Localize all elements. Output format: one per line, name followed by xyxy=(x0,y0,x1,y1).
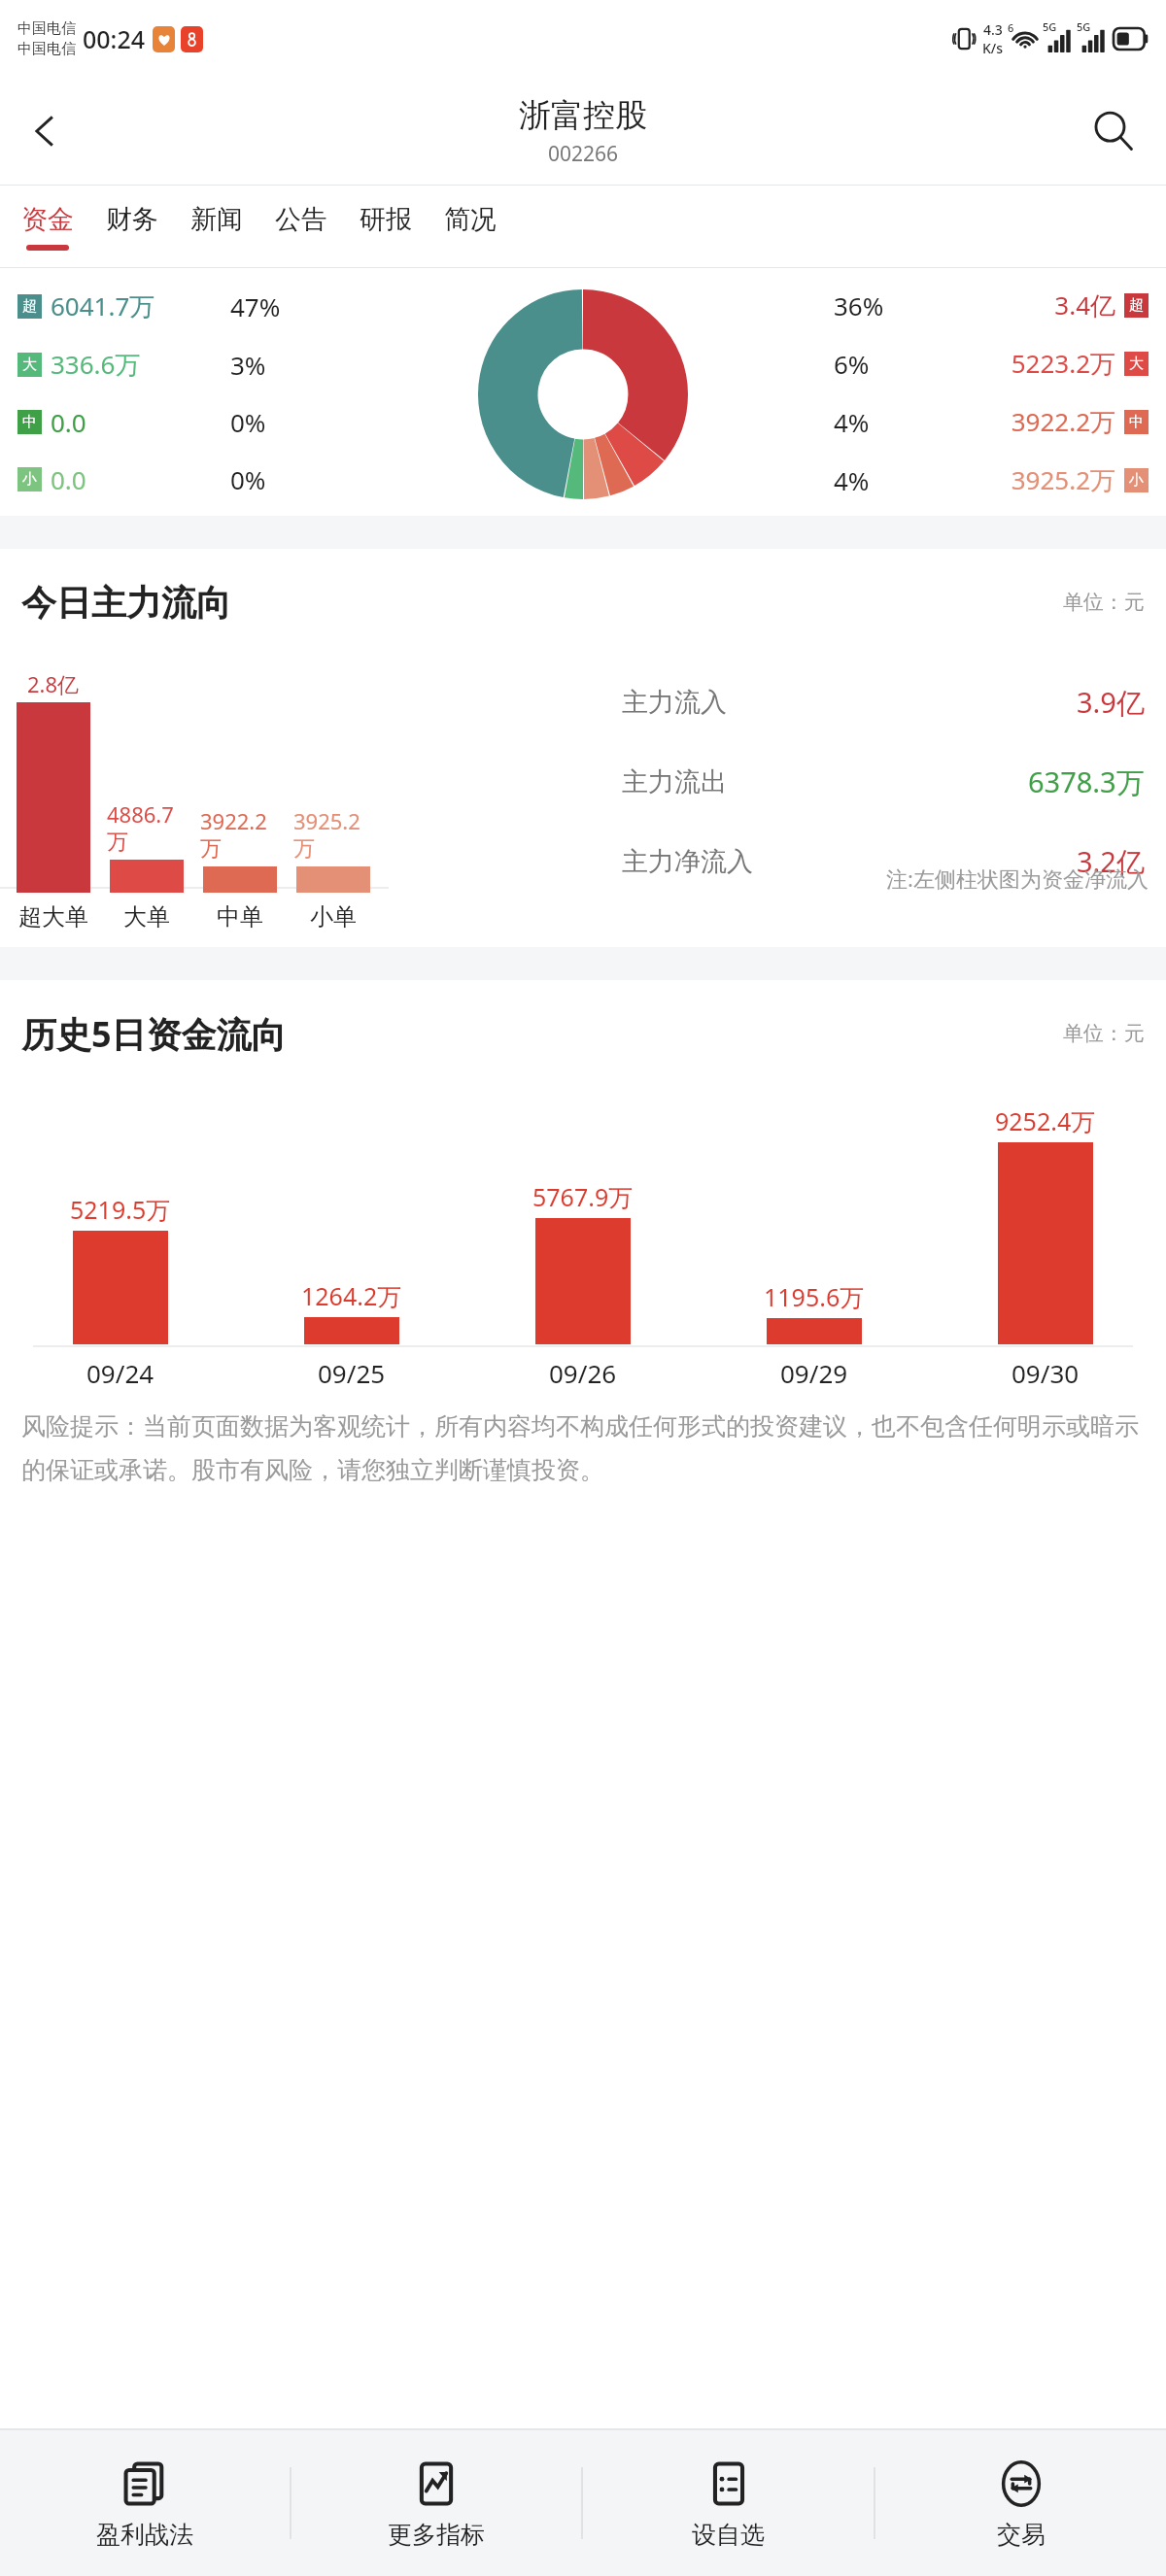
staticText: 小 xyxy=(1129,471,1144,490)
staticText: 5G xyxy=(1043,19,1057,34)
staticText: 0% xyxy=(230,462,266,496)
staticText: 3922.2万 xyxy=(200,806,280,863)
button[interactable]: 交易 xyxy=(875,2430,1166,2576)
staticText: 1264.2万 xyxy=(301,1279,402,1312)
staticText: 主力流入 xyxy=(622,686,727,719)
staticText: 09/25 xyxy=(318,1356,386,1390)
staticText: 4886.7万 xyxy=(107,799,187,856)
staticText: 单位：元 xyxy=(1063,1021,1145,1046)
staticText: 3% xyxy=(230,348,266,382)
staticText: 小 xyxy=(22,470,37,489)
staticText: 中国电信 xyxy=(17,40,76,58)
staticText: 0.0 xyxy=(51,462,86,496)
button[interactable]: Back xyxy=(8,94,82,168)
staticText: 5G xyxy=(1077,19,1091,34)
staticText: 公告 xyxy=(275,203,327,236)
staticText: 09/24 xyxy=(86,1356,154,1390)
staticText: 3.4亿 xyxy=(931,288,1115,322)
button[interactable]: 简况 xyxy=(444,186,497,267)
staticText: 设自选 xyxy=(692,2520,765,2550)
staticText: 5767.9万 xyxy=(532,1180,634,1213)
staticText: 超 xyxy=(22,297,37,316)
staticText: 今日主力流向 xyxy=(21,581,231,625)
button[interactable]: 资金 xyxy=(21,186,74,267)
staticText: 新闻 xyxy=(190,203,243,236)
staticText: 6% xyxy=(834,347,870,381)
staticText: 5219.5万 xyxy=(70,1193,171,1226)
staticText: 3925.2万 xyxy=(293,806,373,863)
button[interactable]: 研报 xyxy=(360,186,412,267)
staticText: 单位：元 xyxy=(1063,590,1145,615)
staticText: 9252.4万 xyxy=(995,1104,1096,1137)
staticText: 中国电信 xyxy=(17,19,76,38)
staticText: 财务 xyxy=(106,203,158,236)
staticText: 风险提示：当前页面数据为客观统计，所有内容均不构成任何形式的投资建议，也不包含任… xyxy=(21,1411,1145,1485)
staticText: 小单 xyxy=(310,902,357,932)
staticText: 4% xyxy=(834,405,870,439)
staticText: 09/29 xyxy=(780,1356,848,1390)
staticText: 36% xyxy=(834,288,884,322)
button[interactable]: 公告 xyxy=(275,186,327,267)
staticText: 主力净流入 xyxy=(622,845,753,878)
staticText: 3.9亿 xyxy=(1077,683,1145,722)
button[interactable]: Search xyxy=(1079,96,1149,166)
staticText: 中单 xyxy=(217,902,263,932)
staticText: 大 xyxy=(1129,355,1144,373)
staticText: 1195.6万 xyxy=(764,1280,865,1313)
staticText: 00:24 xyxy=(83,22,146,55)
staticText: 中 xyxy=(1129,413,1144,431)
staticText: 0.0 xyxy=(51,405,86,439)
staticText: 盈利战法 xyxy=(96,2520,193,2550)
staticText: K/s xyxy=(982,39,1004,57)
staticText: 6 xyxy=(1008,20,1014,35)
staticText: 简况 xyxy=(444,203,497,236)
button[interactable]: 设自选 xyxy=(583,2430,874,2576)
staticText: 超 xyxy=(1129,296,1144,315)
staticText: 0% xyxy=(230,405,266,439)
staticText: 6041.7万 xyxy=(51,288,155,323)
staticText: 大 xyxy=(22,356,37,374)
staticText: 4% xyxy=(834,463,870,497)
staticText: 更多指标 xyxy=(388,2520,485,2550)
staticText: 浙富控股 xyxy=(519,95,647,136)
button[interactable]: 新闻 xyxy=(190,186,243,267)
staticText: 研报 xyxy=(360,203,412,236)
staticText: 3922.2万 xyxy=(931,404,1115,439)
staticText: 002266 xyxy=(548,140,619,168)
staticText: 历史5日资金流向 xyxy=(21,1010,287,1058)
staticText: 4.3 xyxy=(983,20,1003,39)
staticText: 47% xyxy=(230,289,281,323)
staticText: 主力流出 xyxy=(622,765,727,798)
staticText: 6378.3万 xyxy=(1028,763,1145,801)
staticText: 注:左侧柱状图为资金净流入 xyxy=(886,864,1149,893)
staticText: 09/26 xyxy=(549,1356,617,1390)
button[interactable]: 财务 xyxy=(106,186,158,267)
staticText: 3925.2万 xyxy=(931,462,1115,497)
button[interactable]: 更多指标 xyxy=(291,2430,581,2576)
staticText: 大单 xyxy=(123,902,170,932)
button[interactable]: 盈利战法 xyxy=(0,2430,290,2576)
staticText: 336.6万 xyxy=(51,347,141,382)
staticText: 超大单 xyxy=(18,902,88,932)
staticText: 资金 xyxy=(21,203,74,236)
staticText: 3.2亿 xyxy=(1077,842,1145,881)
staticText: 中 xyxy=(22,413,37,431)
staticText: 交易 xyxy=(997,2520,1046,2550)
staticText: 5223.2万 xyxy=(931,346,1115,381)
staticText: 2.8亿 xyxy=(27,669,80,698)
staticText: 09/30 xyxy=(1012,1356,1080,1390)
